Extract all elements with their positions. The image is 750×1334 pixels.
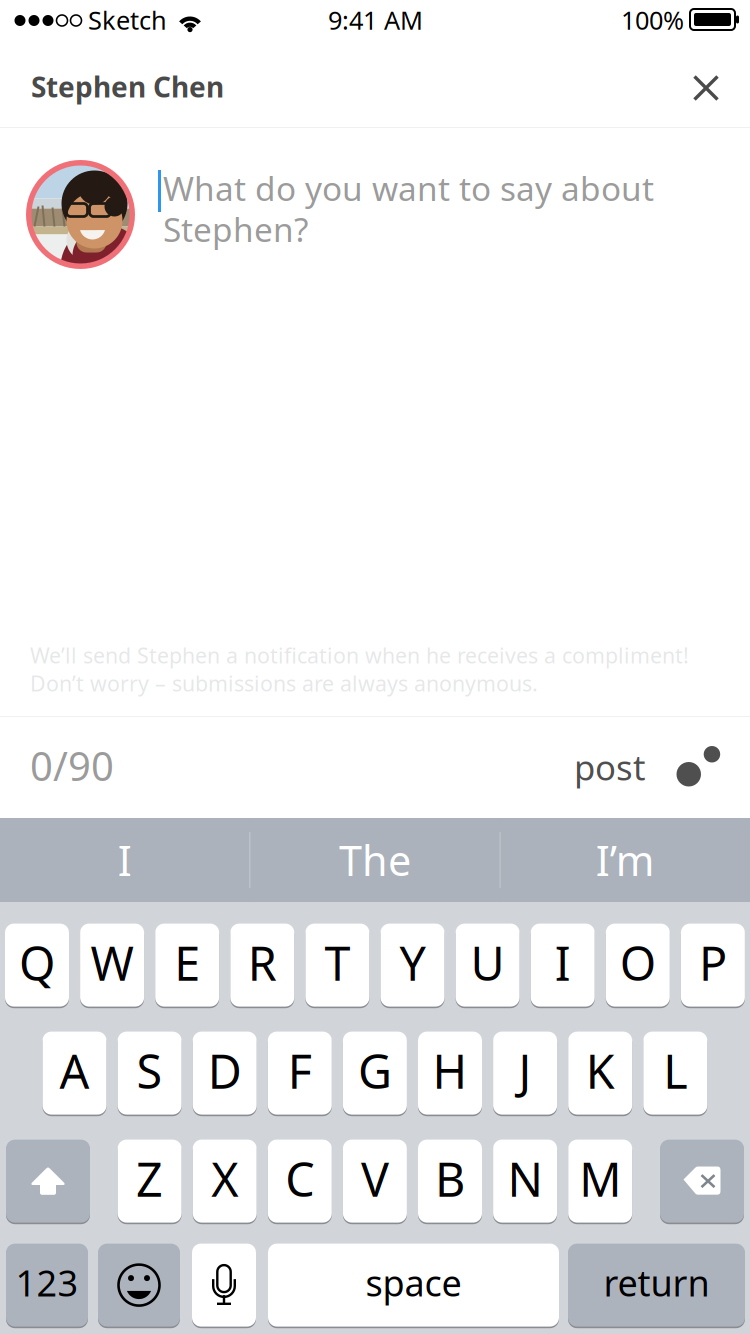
button[interactable]: P	[681, 922, 745, 1008]
button[interactable]: K	[568, 1030, 632, 1116]
staticText: V	[361, 1148, 389, 1210]
staticText: What do you want to say about	[163, 166, 654, 210]
staticText: M	[579, 1148, 621, 1210]
button[interactable]: T	[305, 922, 369, 1008]
staticText: 100%	[621, 3, 684, 37]
staticText: R	[248, 932, 277, 994]
staticText: D	[208, 1040, 242, 1102]
staticText: G	[358, 1040, 392, 1102]
staticText: S	[137, 1040, 163, 1102]
button[interactable]: C	[268, 1138, 332, 1224]
button[interactable]: O	[606, 922, 670, 1008]
button[interactable]: Delete	[660, 1138, 744, 1224]
button[interactable]: M	[568, 1138, 632, 1224]
button[interactable]: X	[193, 1138, 257, 1224]
staticText: Don’t worry – submissions are always ano…	[30, 669, 538, 697]
button[interactable]: N	[493, 1138, 557, 1224]
staticText: B	[435, 1148, 465, 1210]
button[interactable]: J	[493, 1030, 557, 1116]
button[interactable]: post	[566, 734, 750, 810]
staticText: Stephen Chen	[31, 68, 224, 105]
button[interactable]: F	[268, 1030, 332, 1116]
button[interactable]: I	[531, 922, 595, 1008]
button[interactable]: R	[230, 922, 294, 1008]
staticText: The	[339, 833, 411, 887]
button[interactable]: G	[343, 1030, 407, 1116]
staticText: post	[574, 744, 646, 790]
button[interactable]: Close	[666, 48, 746, 128]
button[interactable]: Q	[5, 922, 69, 1008]
staticText: A	[59, 1040, 89, 1102]
button[interactable]: H	[418, 1030, 482, 1116]
staticText: Stephen?	[163, 207, 308, 251]
staticText: X	[211, 1148, 238, 1210]
staticText: F	[288, 1040, 312, 1102]
staticText: K	[586, 1040, 615, 1102]
button[interactable]: U	[456, 922, 520, 1008]
button[interactable]: 123	[6, 1242, 88, 1328]
button[interactable]: Emoji	[98, 1242, 180, 1328]
staticText: Sketch	[88, 3, 167, 37]
staticText: Z	[136, 1148, 163, 1210]
staticText: P	[699, 932, 727, 994]
staticText: Y	[399, 932, 425, 994]
button[interactable]: S	[118, 1030, 182, 1116]
staticText: J	[519, 1040, 532, 1102]
staticText: U	[471, 932, 505, 994]
staticText: O	[620, 932, 656, 994]
button[interactable]: Shift	[6, 1138, 90, 1224]
staticText: W	[91, 932, 134, 994]
staticText: E	[174, 932, 200, 994]
staticText: return	[603, 1259, 709, 1306]
staticText: 9:41 AM	[328, 3, 423, 37]
button[interactable]: I	[0, 818, 249, 902]
staticText: Q	[19, 932, 55, 994]
staticText: H	[432, 1040, 467, 1102]
button[interactable]: The	[250, 818, 500, 902]
button[interactable]: L	[643, 1030, 707, 1116]
button[interactable]: A	[42, 1030, 106, 1116]
button[interactable]: W	[80, 922, 144, 1008]
staticText: T	[324, 932, 350, 994]
staticText: I’m	[596, 833, 655, 887]
staticText: I	[555, 932, 571, 994]
button[interactable]: B	[418, 1138, 482, 1224]
staticText: L	[663, 1040, 687, 1102]
button[interactable]: E	[155, 922, 219, 1008]
button[interactable]: D	[193, 1030, 257, 1116]
button[interactable]: I’m	[501, 818, 750, 902]
button[interactable]: Z	[118, 1138, 182, 1224]
staticText: I	[118, 833, 132, 887]
staticText: N	[508, 1148, 543, 1210]
staticText: 0/90	[30, 739, 114, 792]
staticText: space	[365, 1259, 461, 1306]
button[interactable]: return	[568, 1242, 745, 1328]
button[interactable]: V	[343, 1138, 407, 1224]
staticText: We’ll send Stephen a notification when h…	[30, 641, 689, 669]
staticText: C	[285, 1148, 314, 1210]
button[interactable]: Dictate	[192, 1242, 256, 1328]
staticText: 123	[15, 1259, 78, 1306]
button[interactable]: space	[268, 1242, 559, 1328]
button[interactable]: Y	[380, 922, 444, 1008]
